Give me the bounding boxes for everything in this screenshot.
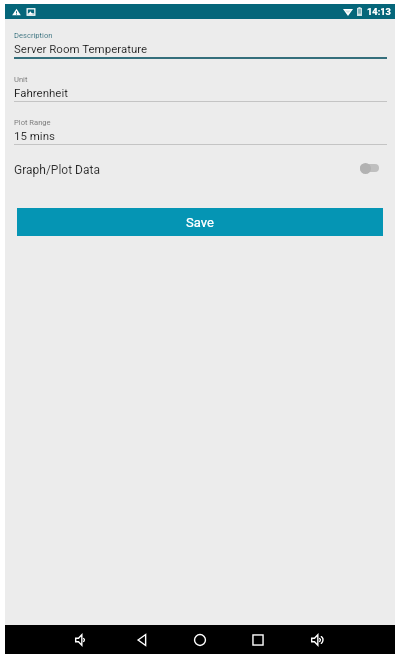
staticText: Save: [186, 215, 214, 230]
staticText: Graph/Plot Data: [14, 163, 100, 177]
staticText: 15 mins: [14, 129, 55, 142]
button[interactable]: Save: [17, 208, 383, 236]
staticText: Plot Range: [14, 118, 51, 127]
staticText: 14:13: [367, 6, 391, 17]
button[interactable]: Recents: [244, 625, 272, 654]
button[interactable]: Graph/Plot Data: [5, 151, 395, 189]
staticText: Unit: [14, 75, 28, 84]
button[interactable]: Home: [186, 625, 214, 654]
staticText: Fahrenheit: [14, 86, 68, 99]
staticText: Server Room Temperature: [14, 42, 148, 55]
button[interactable]: Volume up: [303, 625, 331, 654]
staticText: Description: [14, 31, 53, 40]
button[interactable]: Back: [128, 625, 156, 654]
button[interactable]: Volume down: [67, 625, 95, 654]
